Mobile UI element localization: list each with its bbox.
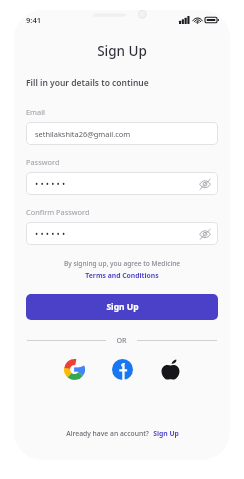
button[interactable]: Sign up with Facebook [110, 357, 134, 381]
staticText: sethilakshita26@gmail.com [35, 129, 131, 139]
button[interactable]: Show password [197, 226, 213, 242]
button[interactable]: Show password [197, 176, 213, 192]
button[interactable]: sethilakshita26@gmail.com [26, 122, 218, 145]
button[interactable]: Sign Up [153, 429, 179, 438]
staticText: 9:41 [26, 15, 42, 25]
staticText: By signing up, you agree to Medicine [14, 259, 230, 268]
button[interactable]: • • • • • • [26, 222, 218, 245]
staticText: Fill in your details to continue [26, 77, 230, 89]
staticText: Email [26, 107, 230, 117]
staticText: • • • • • • [35, 178, 66, 190]
staticText: Sign Up [14, 42, 230, 60]
staticText: Terms and Conditions [85, 271, 159, 280]
button[interactable]: Terms and Conditions [85, 271, 159, 280]
staticText: Password [26, 157, 230, 167]
staticText: Confirm Password [26, 207, 230, 217]
button[interactable]: Sign up with Apple [158, 357, 182, 381]
staticText: Sign Up [106, 301, 139, 313]
staticText: Sign Up [153, 429, 179, 438]
button[interactable]: Sign up with Google [62, 357, 86, 381]
staticText: OR [116, 335, 127, 345]
staticText: Already have an account? [66, 429, 149, 438]
staticText: • • • • • • [35, 228, 66, 240]
button[interactable]: Sign Up [26, 294, 218, 320]
button[interactable]: • • • • • • [26, 172, 218, 195]
